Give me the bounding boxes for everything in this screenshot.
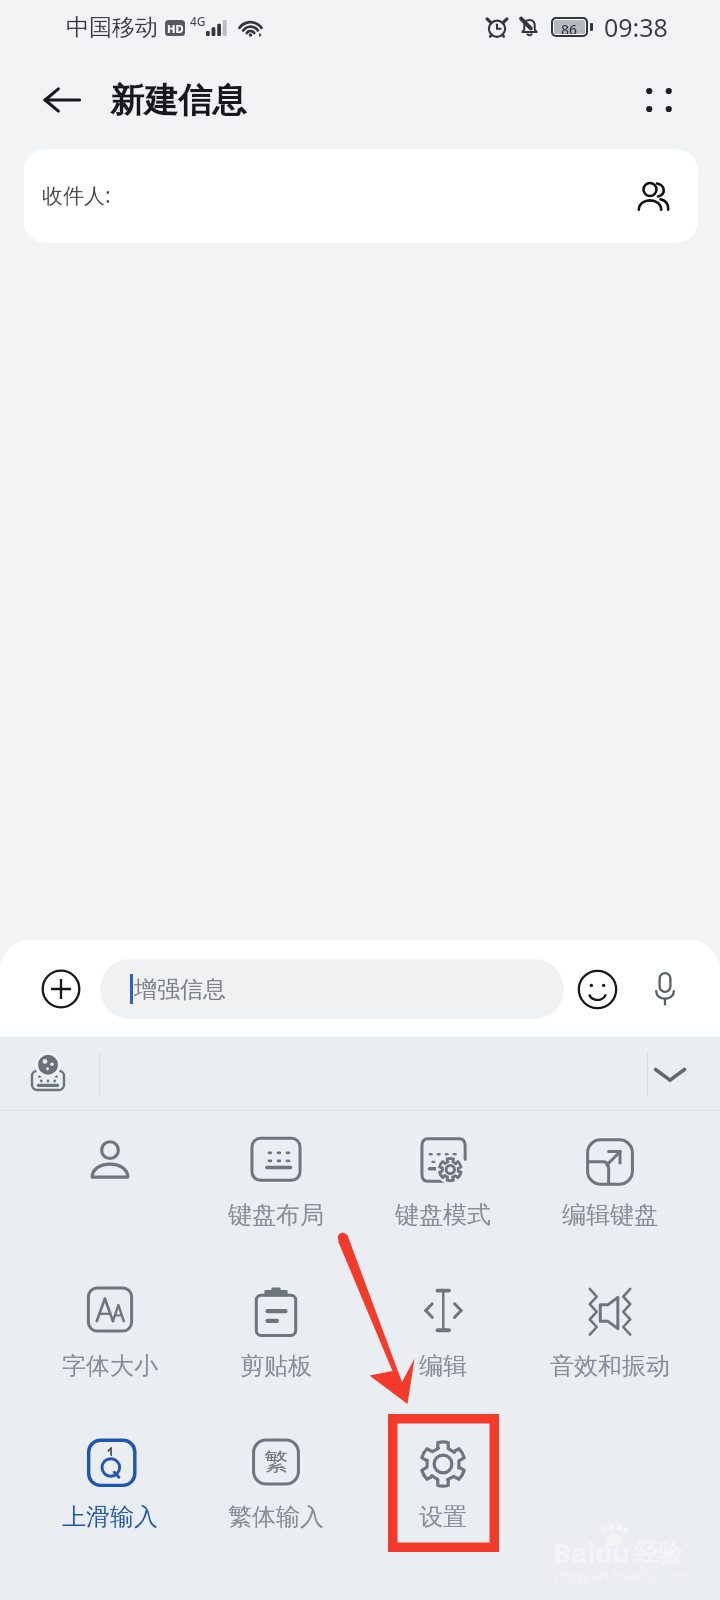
button[interactable]: 增强信息 (100, 959, 564, 1019)
button[interactable]: 键盘模式 (359, 1134, 526, 1285)
staticText: 剪贴板 (240, 1351, 312, 1381)
staticText: 键盘布局 (228, 1200, 324, 1230)
button[interactable]: 添加 (31, 959, 91, 1019)
button[interactable]: 返回 (26, 64, 98, 136)
staticText: 音效和振动 (550, 1351, 670, 1381)
staticText: 设置 (419, 1502, 467, 1532)
button[interactable]: 编辑键盘 (526, 1134, 693, 1285)
staticText: 新建信息 (110, 79, 246, 122)
button[interactable]: 上滑输入 (27, 1436, 193, 1587)
button[interactable]: 编辑 (359, 1285, 526, 1436)
staticText: 中国移动 (66, 13, 158, 42)
staticText: 增强信息 (134, 975, 226, 1004)
button[interactable]: 剪贴板 (193, 1285, 359, 1436)
button[interactable]: 语音输入 (635, 959, 695, 1019)
button[interactable]: 键盘布局 (193, 1134, 359, 1285)
staticText: 86 (561, 20, 578, 34)
staticText: 上滑输入 (62, 1502, 158, 1532)
button[interactable]: 收件人: (24, 149, 698, 243)
staticText: 编辑 (419, 1351, 467, 1381)
button[interactable]: 繁 (193, 1436, 359, 1587)
staticText: 繁体输入 (228, 1502, 324, 1532)
staticText: 4G (190, 13, 206, 29)
staticText: 经验 (634, 1538, 682, 1568)
staticText: Baidu (553, 1534, 630, 1571)
staticText: HD (167, 21, 184, 36)
button[interactable]: 选择联系人 (623, 166, 683, 226)
staticText: 编辑键盘 (562, 1200, 658, 1230)
button[interactable]: 字体大小 (27, 1285, 193, 1436)
button[interactable]: 收起键盘 (638, 1042, 702, 1106)
staticText: 收件人: (42, 181, 111, 210)
button[interactable]: 更多选项 (623, 64, 695, 136)
button[interactable]: 表情 (567, 959, 627, 1019)
button[interactable]: 音效和振动 (526, 1285, 693, 1436)
button[interactable]: 切换输入法 (18, 1044, 78, 1104)
button[interactable]: 设置 (359, 1436, 526, 1587)
staticText: 09:38 (604, 10, 668, 44)
button[interactable]: 账号 (27, 1134, 193, 1285)
staticText: 字体大小 (62, 1351, 158, 1381)
staticText: 繁 (264, 1447, 288, 1477)
staticText: 键盘模式 (395, 1200, 491, 1230)
